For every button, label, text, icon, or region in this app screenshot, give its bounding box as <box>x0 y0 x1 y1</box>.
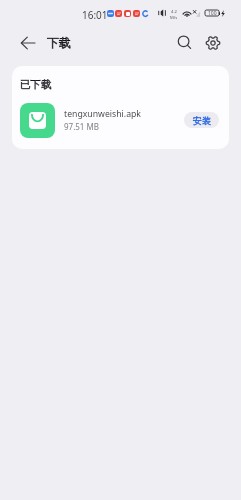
staticText: 16:01 <box>82 8 108 22</box>
staticText: 4.2 <box>171 9 177 15</box>
staticText: 已下载 <box>20 78 52 91</box>
button[interactable]: 安装 <box>184 112 219 128</box>
staticText: 安装 <box>193 115 211 126</box>
staticText: 已下载 <box>20 78 52 91</box>
button[interactable]: tengxunweishi.apk <box>12 91 229 149</box>
staticText: M/s <box>170 15 178 21</box>
staticText: tengxunweishi.apk <box>64 108 142 120</box>
staticText: 97.51 MB <box>64 121 99 132</box>
button[interactable]: Search <box>174 32 196 54</box>
staticText: 安装 <box>193 115 211 126</box>
staticText: 下载 <box>47 35 71 50</box>
button[interactable]: Back <box>17 32 39 54</box>
staticText: 100 <box>208 10 217 16</box>
staticText: 下载 <box>47 35 71 50</box>
button[interactable]: Settings <box>202 32 224 54</box>
